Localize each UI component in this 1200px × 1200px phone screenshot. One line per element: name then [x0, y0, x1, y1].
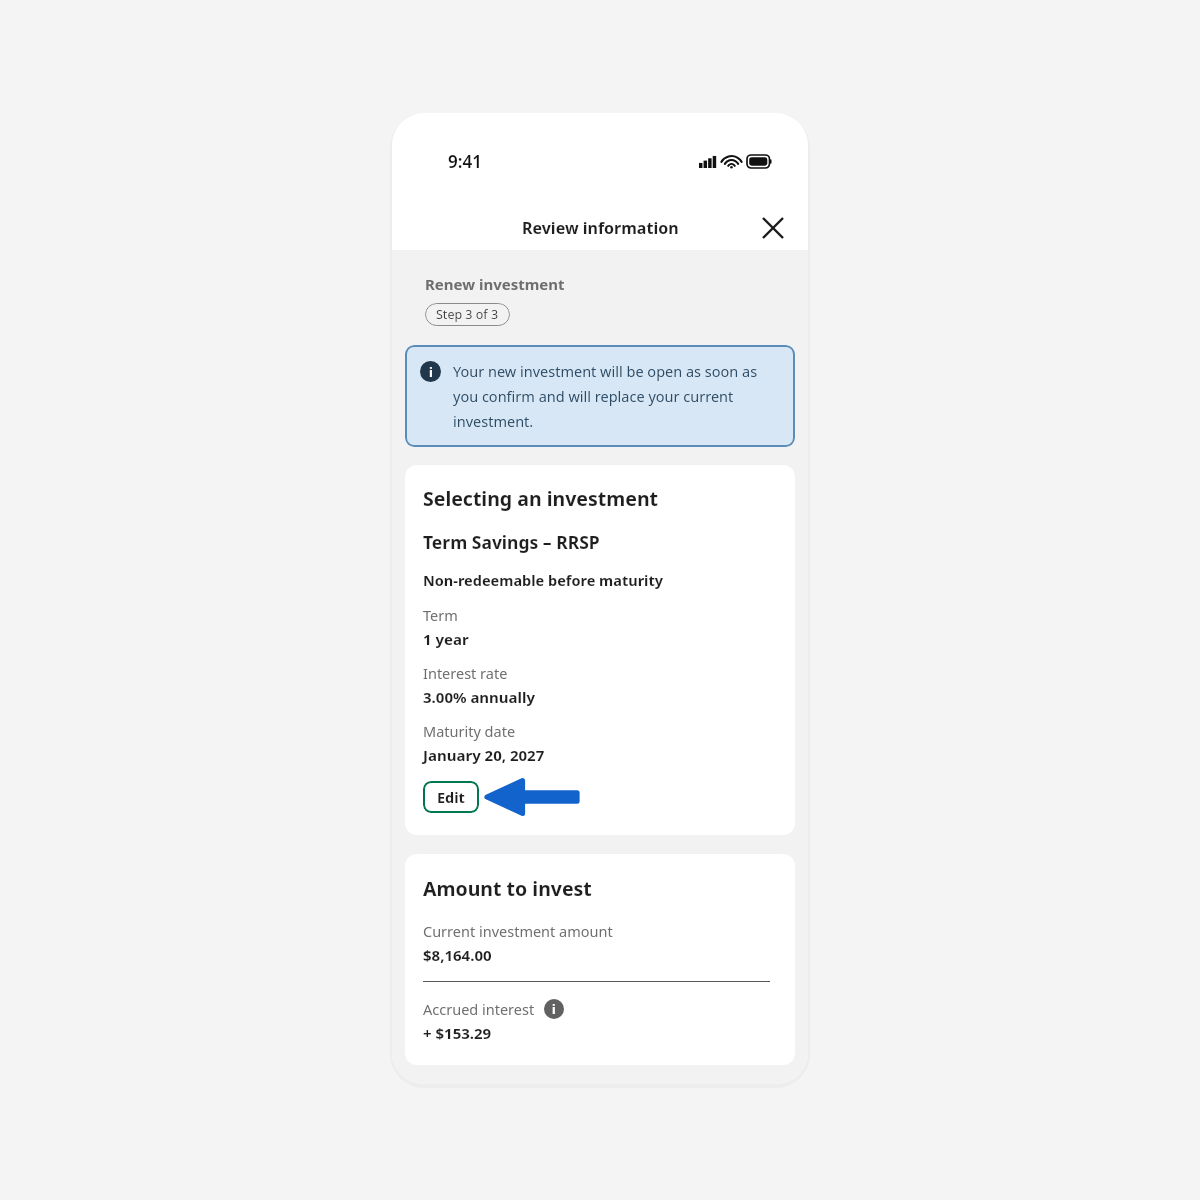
- staticText: Term: [423, 605, 458, 625]
- staticText: Selecting an investment: [423, 485, 659, 512]
- staticText: $8,164.00: [423, 945, 492, 965]
- staticText: Maturity date: [423, 721, 516, 741]
- staticText: + $153.29: [423, 1023, 492, 1043]
- staticText: Accrued interest: [423, 999, 535, 1019]
- staticText: Non-redeemable before maturity: [423, 570, 664, 590]
- staticText: Edit: [437, 787, 465, 807]
- staticText: Interest rate: [423, 663, 508, 683]
- button[interactable]: Edit: [423, 781, 479, 813]
- staticText: 3.00% annually: [423, 687, 536, 707]
- staticText: 1 year: [423, 629, 469, 649]
- staticText: Term Savings – RRSP: [423, 530, 600, 554]
- staticText: January 20, 2027: [423, 745, 545, 765]
- staticText: Amount to invest: [423, 875, 592, 902]
- staticText: i: [429, 363, 433, 381]
- staticText: Your new investment will be open as soon…: [453, 361, 779, 431]
- staticText: Review information: [522, 217, 679, 239]
- button[interactable]: More information about accrued interest: [544, 999, 564, 1019]
- staticText: Step 3 of 3: [436, 306, 499, 323]
- staticText: i: [552, 1001, 556, 1017]
- staticText: Current investment amount: [423, 921, 613, 941]
- staticText: 9:41: [448, 150, 482, 173]
- button[interactable]: Close: [756, 211, 790, 245]
- staticText: Renew investment: [425, 274, 565, 294]
